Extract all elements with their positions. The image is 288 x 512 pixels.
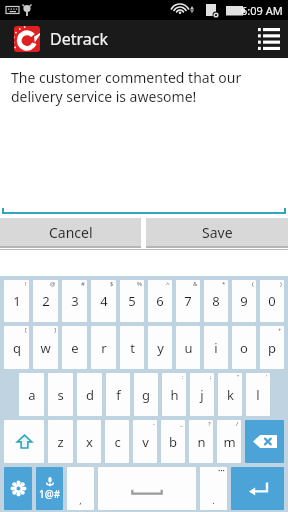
staticText: & <box>193 280 198 288</box>
staticText: ( <box>252 280 254 288</box>
staticText: o <box>240 339 248 357</box>
staticText: ! <box>25 280 27 288</box>
staticText: v <box>142 433 149 451</box>
button[interactable]: @ <box>33 280 58 322</box>
staticText: n <box>197 433 206 451</box>
staticText: ; <box>210 373 212 381</box>
staticText: ) <box>280 280 282 288</box>
staticText: p <box>268 339 276 357</box>
staticText: . <box>212 494 215 506</box>
staticText: Cancel <box>49 223 93 242</box>
staticText: a <box>28 386 36 404</box>
button[interactable] <box>98 467 196 510</box>
staticText: g <box>142 386 150 404</box>
button[interactable]: i <box>204 326 228 369</box>
button[interactable]: Symbols <box>36 467 63 510</box>
staticText: - <box>153 420 155 428</box>
staticText: ' <box>266 373 268 381</box>
staticText: 4 <box>100 292 108 310</box>
button[interactable]: ' <box>246 373 270 416</box>
staticText: h <box>170 386 179 404</box>
staticText: s <box>57 386 64 404</box>
button[interactable]: % <box>120 280 144 322</box>
button[interactable]: s <box>48 373 73 416</box>
button[interactable]: d <box>77 373 102 416</box>
button[interactable]: ; <box>190 373 214 416</box>
button[interactable]: - <box>133 420 157 463</box>
button[interactable]: e <box>62 326 87 369</box>
staticText: , <box>79 494 82 506</box>
button[interactable]: [ <box>4 326 29 369</box>
button[interactable]: ? <box>189 420 213 463</box>
staticText: 7 <box>184 292 192 310</box>
button[interactable]: + <box>260 326 284 369</box>
staticText: z <box>57 433 64 451</box>
staticText: t <box>130 339 135 357</box>
button[interactable]: Backspace <box>245 420 284 463</box>
button[interactable]: c <box>105 420 129 463</box>
staticText: 9 <box>240 292 248 310</box>
button[interactable]: , <box>67 467 94 510</box>
button[interactable]: : <box>162 373 186 416</box>
button[interactable]: Shift <box>4 420 44 463</box>
button[interactable]: ] <box>33 326 58 369</box>
staticText: m <box>223 433 236 451</box>
staticText: ^ <box>166 280 170 288</box>
staticText: q <box>13 339 21 357</box>
staticText: Save <box>202 223 233 242</box>
button[interactable]: Cancel <box>0 218 141 246</box>
button[interactable]: Enter <box>231 467 284 510</box>
staticText: l <box>256 386 260 404</box>
button[interactable]: ! <box>4 280 29 322</box>
button[interactable]: f <box>106 373 130 416</box>
staticText: c <box>114 433 121 451</box>
button[interactable]: & <box>176 280 200 322</box>
staticText: Detrack <box>50 28 108 50</box>
staticText: k <box>227 386 234 404</box>
staticText: $ <box>110 280 114 288</box>
staticText: 0 <box>268 292 276 310</box>
staticText: [ <box>25 326 27 334</box>
button[interactable]: " <box>218 373 242 416</box>
button[interactable]: o <box>232 326 256 369</box>
button[interactable]: Save <box>146 218 288 246</box>
staticText: ? <box>208 420 211 428</box>
button[interactable]: z <box>48 420 73 463</box>
staticText: 6 <box>156 292 164 310</box>
staticText: u <box>184 339 193 357</box>
staticText: r <box>101 339 107 357</box>
button[interactable]: x <box>77 420 101 463</box>
button[interactable]: g <box>134 373 158 416</box>
staticText: 8 <box>212 292 220 310</box>
button[interactable]: Menu <box>250 20 288 58</box>
button[interactable]: ( <box>232 280 256 322</box>
button[interactable]: Settings <box>4 467 32 510</box>
button[interactable]: u <box>176 326 200 369</box>
button[interactable]: # <box>62 280 87 322</box>
button[interactable]: ) <box>260 280 284 322</box>
staticText: " <box>237 373 240 381</box>
staticText: w <box>40 339 51 357</box>
staticText: 2 <box>42 292 50 310</box>
staticText: The customer commented that our delivery… <box>11 68 277 106</box>
button[interactable]: ••• <box>200 467 227 510</box>
staticText: y <box>157 339 164 357</box>
staticText: b <box>169 433 177 451</box>
button[interactable]: y <box>148 326 172 369</box>
button[interactable]: $ <box>91 280 116 322</box>
staticText: j <box>200 386 204 404</box>
staticText: : <box>182 373 184 381</box>
button[interactable]: r <box>91 326 116 369</box>
staticText: ] <box>54 326 56 334</box>
button[interactable]: t <box>120 326 144 369</box>
staticText: 5 <box>128 292 136 310</box>
button[interactable]: ^ <box>148 280 172 322</box>
staticText: * <box>222 280 226 288</box>
staticText: / <box>236 420 239 428</box>
button[interactable]: _ <box>161 420 185 463</box>
button[interactable]: a <box>19 373 44 416</box>
button[interactable]: / <box>217 420 241 463</box>
button[interactable]: * <box>204 280 228 322</box>
staticText: + <box>278 326 282 334</box>
staticText: ••• <box>218 467 225 475</box>
